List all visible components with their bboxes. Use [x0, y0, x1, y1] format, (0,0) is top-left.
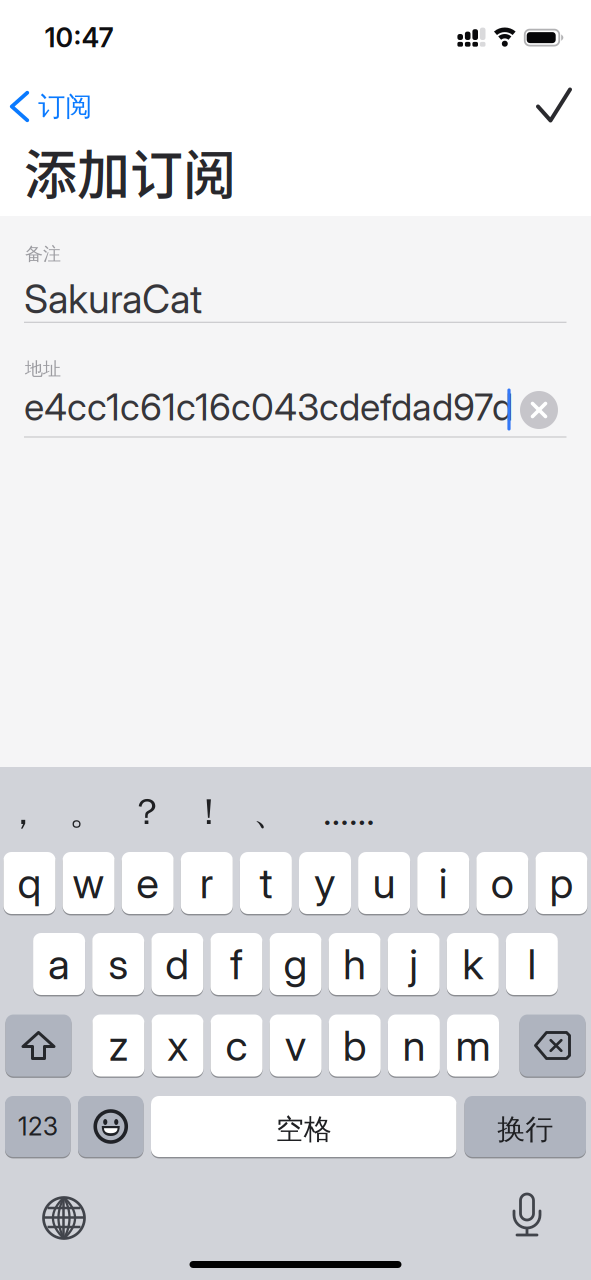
- staticText: z: [108, 1020, 128, 1071]
- staticText: SakuraCat: [24, 275, 202, 323]
- staticText: j: [409, 939, 418, 989]
- button[interactable]: t: [240, 851, 292, 915]
- button[interactable]: s: [92, 932, 144, 996]
- staticText: w: [73, 858, 105, 908]
- button[interactable]: 清除文本: [520, 391, 558, 429]
- button[interactable]: g: [269, 932, 321, 996]
- staticText: ，: [5, 789, 41, 835]
- button[interactable]: ，: [5, 789, 41, 835]
- staticText: t: [259, 858, 272, 908]
- staticText: g: [283, 939, 307, 989]
- staticText: q: [17, 858, 41, 908]
- staticText: m: [455, 1020, 490, 1071]
- button[interactable]: a: [33, 932, 85, 996]
- button[interactable]: e: [122, 851, 174, 915]
- staticText: b: [343, 1020, 367, 1071]
- staticText: e4cc1c61c16c043cdefdad97d: [24, 385, 513, 429]
- staticText: 123: [18, 1111, 58, 1142]
- button[interactable]: w: [63, 851, 115, 915]
- button[interactable]: k: [447, 932, 499, 996]
- button[interactable]: Shift: [5, 1013, 71, 1077]
- staticText: ！: [191, 789, 227, 835]
- button[interactable]: 、: [253, 789, 289, 835]
- staticText: i: [439, 858, 448, 908]
- staticText: 10:47: [44, 21, 113, 54]
- button[interactable]: 听写: [512, 1193, 542, 1239]
- button[interactable]: 123: [5, 1095, 70, 1158]
- button[interactable]: 切换键盘: [41, 1195, 86, 1240]
- staticText: 。: [69, 789, 105, 835]
- button[interactable]: m: [447, 1013, 499, 1077]
- staticText: a: [48, 939, 70, 989]
- staticText: c: [226, 1020, 248, 1071]
- button[interactable]: y: [299, 851, 351, 915]
- button[interactable]: SakuraCat: [0, 0, 591, 1280]
- button[interactable]: u: [358, 851, 410, 915]
- button[interactable]: j: [388, 932, 440, 996]
- button[interactable]: n: [388, 1013, 440, 1077]
- staticText: e: [136, 858, 159, 908]
- staticText: x: [167, 1020, 188, 1071]
- button[interactable]: p: [535, 851, 587, 915]
- staticText: s: [108, 939, 128, 989]
- staticText: h: [343, 939, 366, 989]
- staticText: p: [549, 858, 573, 908]
- button[interactable]: l: [506, 932, 558, 996]
- button[interactable]: 订阅: [12, 89, 92, 123]
- staticText: 添加订阅: [24, 133, 236, 210]
- staticText: ？: [129, 789, 165, 835]
- staticText: ……: [323, 790, 375, 834]
- button[interactable]: c: [211, 1013, 263, 1077]
- button[interactable]: e4cc1c61c16c043cdefdad97d: [0, 0, 591, 1280]
- button[interactable]: r: [181, 851, 233, 915]
- button[interactable]: f: [210, 932, 262, 996]
- button[interactable]: 删除: [519, 1013, 585, 1077]
- button[interactable]: ……: [323, 790, 375, 834]
- staticText: r: [200, 858, 214, 908]
- button[interactable]: 。: [69, 789, 105, 835]
- button[interactable]: 表情: [78, 1095, 143, 1158]
- button[interactable]: i: [417, 851, 469, 915]
- staticText: l: [527, 939, 536, 989]
- staticText: o: [491, 858, 514, 908]
- staticText: y: [314, 858, 336, 908]
- button[interactable]: 完成: [538, 89, 570, 120]
- staticText: f: [230, 939, 243, 989]
- button[interactable]: d: [151, 932, 203, 996]
- button[interactable]: v: [270, 1013, 322, 1077]
- button[interactable]: ！: [191, 789, 227, 835]
- staticText: n: [402, 1020, 425, 1071]
- button[interactable]: ？: [129, 789, 165, 835]
- staticText: v: [285, 1020, 307, 1071]
- staticText: 换行: [497, 1112, 553, 1147]
- staticText: u: [373, 858, 396, 908]
- button[interactable]: 空格: [151, 1095, 456, 1158]
- button[interactable]: o: [476, 851, 528, 915]
- staticText: k: [462, 939, 483, 989]
- staticText: d: [165, 939, 189, 989]
- staticText: 订阅: [38, 89, 92, 123]
- button[interactable]: z: [92, 1013, 144, 1077]
- staticText: 空格: [276, 1112, 332, 1147]
- button[interactable]: x: [151, 1013, 203, 1077]
- button[interactable]: q: [3, 851, 55, 915]
- staticText: 地址: [25, 358, 61, 380]
- button[interactable]: h: [329, 932, 381, 996]
- button[interactable]: 换行: [464, 1095, 586, 1158]
- button[interactable]: b: [329, 1013, 381, 1077]
- staticText: 备注: [25, 243, 61, 265]
- staticText: 、: [253, 789, 289, 835]
